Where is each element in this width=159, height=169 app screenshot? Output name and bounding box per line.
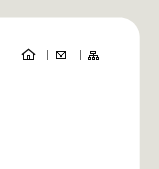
button[interactable]: Mail: [55, 50, 66, 60]
button[interactable]: Organization chart: [87, 50, 99, 60]
button[interactable]: Home: [22, 48, 35, 61]
